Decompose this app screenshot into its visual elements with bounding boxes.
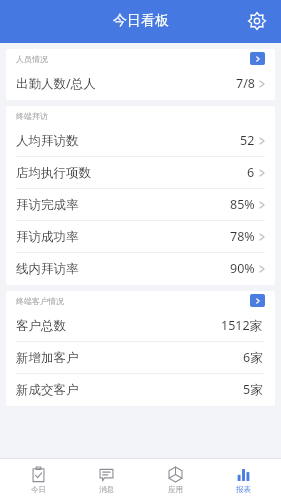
button[interactable]: 拜访完成率 xyxy=(6,189,275,220)
staticText: 客户总数 xyxy=(16,318,66,334)
button[interactable]: 展开终端客户情况 xyxy=(250,294,265,307)
button[interactable]: 应用 xyxy=(145,459,205,500)
staticText: 拜访成功率 xyxy=(16,229,79,245)
staticText: 出勤人数/总人 xyxy=(16,75,96,92)
staticText: 消息 xyxy=(99,485,114,494)
staticText: 5家 xyxy=(243,381,263,398)
staticText: 终端拜访 xyxy=(16,111,48,121)
button[interactable]: 展开人员情况 xyxy=(250,52,265,65)
staticText: 90% xyxy=(230,260,255,277)
button[interactable]: 新增加客户 xyxy=(6,342,275,373)
staticText: 终端客户情况 xyxy=(16,296,64,306)
staticText: 新成交客户 xyxy=(16,382,79,398)
staticText: 新增加客户 xyxy=(16,350,79,366)
button[interactable]: Settings xyxy=(243,7,271,35)
button[interactable]: 拜访成功率 xyxy=(6,221,275,252)
staticText: 报表 xyxy=(236,485,251,494)
button[interactable]: 出勤人数/总人 xyxy=(6,68,275,99)
button[interactable]: 人均拜访数 xyxy=(6,125,275,156)
staticText: 78% xyxy=(230,228,255,245)
button[interactable]: 消息 xyxy=(76,459,136,500)
staticText: 应用 xyxy=(168,485,183,494)
staticText: 今日 xyxy=(31,485,46,494)
staticText: 52 xyxy=(240,132,255,149)
staticText: 线内拜访率 xyxy=(16,261,79,277)
button[interactable]: 报表 xyxy=(213,459,273,500)
staticText: 店均执行项数 xyxy=(16,165,91,181)
staticText: 今日看板 xyxy=(113,12,169,30)
staticText: 人均拜访数 xyxy=(16,133,79,149)
staticText: 1512家 xyxy=(221,317,263,334)
button[interactable]: 今日 xyxy=(8,459,68,500)
staticText: 6 xyxy=(247,164,255,181)
button[interactable]: 线内拜访率 xyxy=(6,253,275,284)
button[interactable]: 客户总数 xyxy=(6,310,275,341)
staticText: 6家 xyxy=(243,349,263,366)
staticText: 拜访完成率 xyxy=(16,197,79,213)
staticText: 7/8 xyxy=(236,75,255,92)
button[interactable]: 新成交客户 xyxy=(6,374,275,405)
button[interactable]: 店均执行项数 xyxy=(6,157,275,188)
staticText: 人员情况 xyxy=(16,54,48,64)
staticText: 85% xyxy=(230,196,255,213)
